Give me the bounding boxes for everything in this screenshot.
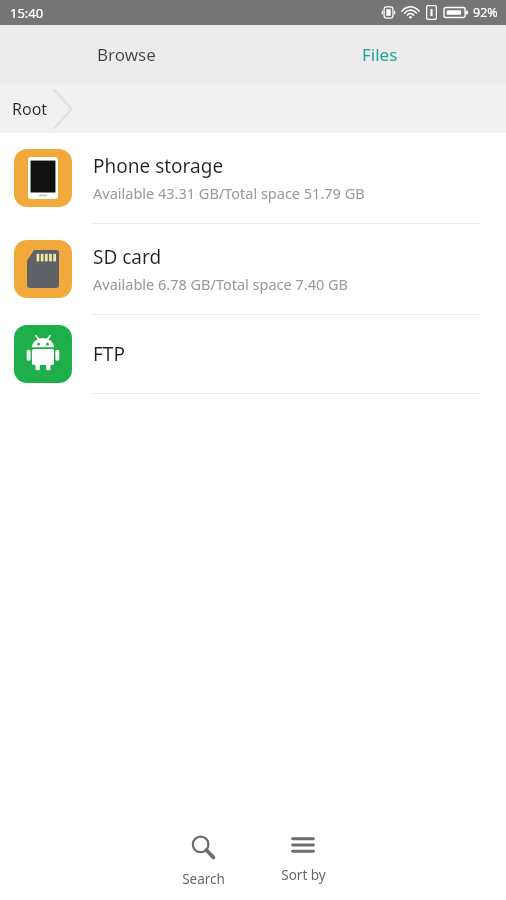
staticText: 92% [473,4,498,21]
staticText: Root [12,98,48,120]
button[interactable]: Root [0,88,74,130]
staticText: Sort by [281,866,326,884]
staticText: FTP [93,341,125,367]
button[interactable]: Files [253,25,506,84]
button[interactable]: Sort by [253,810,353,900]
staticText: Files [362,43,398,66]
button[interactable]: SD card [0,224,506,314]
staticText: 15:40 [10,4,44,22]
button[interactable]: Browse [0,25,253,84]
button[interactable]: Phone storage [0,133,506,223]
staticText: Browse [97,43,156,66]
staticText: Available 6.78 GB/Total space 7.40 GB [93,274,349,294]
staticText: Available 43.31 GB/Total space 51.79 GB [93,183,365,203]
staticText: Search [182,870,225,888]
button[interactable]: FTP [0,315,506,393]
staticText: SD card [93,244,162,270]
button[interactable]: Search [153,810,253,900]
staticText: Phone storage [93,153,224,179]
